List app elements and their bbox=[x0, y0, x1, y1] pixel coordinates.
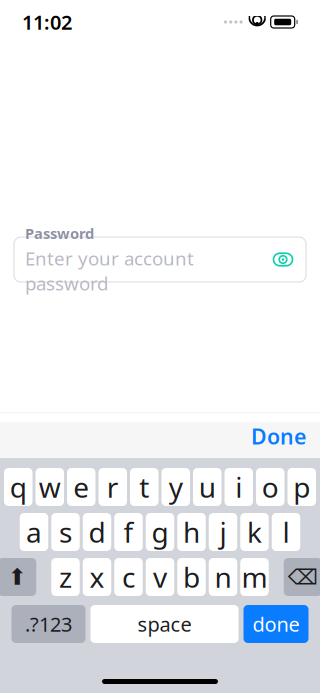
button[interactable]: f bbox=[114, 513, 143, 551]
button[interactable]: n bbox=[209, 558, 237, 596]
button[interactable]: Done bbox=[237, 413, 320, 459]
staticText: 11:02 bbox=[22, 9, 72, 35]
button[interactable]: v bbox=[146, 558, 174, 596]
button[interactable]: i bbox=[224, 468, 253, 506]
staticText: t bbox=[139, 468, 149, 506]
button[interactable]: p bbox=[287, 468, 316, 506]
staticText: m bbox=[241, 558, 267, 596]
button[interactable]: y bbox=[161, 468, 190, 506]
staticText: i bbox=[235, 468, 242, 506]
staticText: j bbox=[219, 513, 226, 551]
button[interactable]: u bbox=[193, 468, 221, 506]
button[interactable]: m bbox=[240, 558, 269, 596]
staticText: l bbox=[282, 513, 289, 551]
button[interactable]: w bbox=[35, 468, 64, 506]
button[interactable]: x bbox=[83, 558, 111, 596]
button[interactable]: d bbox=[83, 513, 111, 551]
staticText: ⌫ bbox=[288, 565, 318, 589]
button[interactable]: e bbox=[67, 468, 95, 506]
staticText: u bbox=[199, 468, 216, 506]
staticText: g bbox=[151, 513, 168, 551]
staticText: space bbox=[137, 611, 191, 637]
staticText: k bbox=[247, 513, 262, 551]
button[interactable]: .?123 bbox=[11, 605, 85, 643]
staticText: a bbox=[26, 513, 42, 551]
staticText: v bbox=[153, 558, 167, 596]
staticText: z bbox=[59, 558, 72, 596]
staticText: w bbox=[39, 468, 61, 506]
staticText: y bbox=[169, 468, 183, 506]
staticText: q bbox=[10, 468, 27, 506]
button[interactable]: Delete bbox=[284, 558, 320, 596]
staticText: h bbox=[183, 513, 200, 551]
staticText: .?123 bbox=[25, 611, 72, 637]
staticText: ⬆ bbox=[8, 564, 27, 590]
button[interactable]: s bbox=[51, 513, 80, 551]
staticText: p bbox=[293, 468, 310, 506]
button[interactable]: r bbox=[98, 468, 127, 506]
button[interactable]: z bbox=[51, 558, 80, 596]
staticText: c bbox=[122, 558, 135, 596]
staticText: b bbox=[183, 558, 200, 596]
staticText: x bbox=[89, 558, 104, 596]
staticText: d bbox=[88, 513, 105, 551]
staticText: e bbox=[73, 468, 89, 506]
button[interactable]: j bbox=[209, 513, 237, 551]
staticText: f bbox=[123, 513, 133, 551]
button[interactable]: Show password bbox=[268, 244, 298, 274]
staticText: r bbox=[107, 468, 119, 506]
button[interactable]: h bbox=[177, 513, 206, 551]
staticText: o bbox=[262, 468, 279, 506]
staticText: Enter your account password bbox=[25, 246, 194, 295]
button[interactable]: a bbox=[20, 513, 48, 551]
button[interactable]: b bbox=[177, 558, 206, 596]
staticText: Done bbox=[251, 422, 306, 450]
staticText: n bbox=[214, 558, 231, 596]
button[interactable]: space bbox=[90, 605, 238, 643]
staticText: Password bbox=[25, 223, 94, 243]
staticText: done bbox=[252, 611, 299, 637]
button[interactable]: l bbox=[272, 513, 300, 551]
staticText: s bbox=[59, 513, 72, 551]
button[interactable]: t bbox=[130, 468, 158, 506]
button[interactable]: done bbox=[243, 605, 308, 643]
button[interactable]: q bbox=[4, 468, 32, 506]
button[interactable]: k bbox=[240, 513, 269, 551]
button[interactable]: o bbox=[256, 468, 284, 506]
button[interactable]: c bbox=[114, 558, 143, 596]
button[interactable]: g bbox=[146, 513, 174, 551]
button[interactable]: Shift bbox=[0, 558, 36, 596]
